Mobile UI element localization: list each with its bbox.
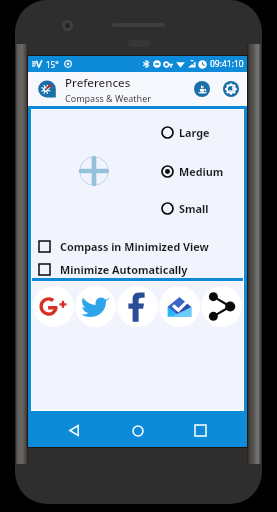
- button[interactable]: Back: [58, 414, 91, 447]
- staticText: Minimize Automatically: [60, 262, 188, 277]
- button[interactable]: Large: [159, 123, 212, 142]
- button[interactable]: Minimize Automatically: [35, 260, 192, 279]
- button[interactable]: Email: [159, 286, 200, 327]
- button[interactable]: Java: [194, 81, 210, 97]
- staticText: Compass in Minimized View: [60, 239, 209, 254]
- staticText: Large: [179, 125, 210, 140]
- staticText: Small: [179, 201, 209, 216]
- button[interactable]: Facebook: [117, 286, 158, 327]
- button[interactable]: Medium: [159, 162, 226, 181]
- button[interactable]: Compass in Minimized View: [35, 237, 213, 256]
- button[interactable]: Recents: [184, 414, 217, 447]
- staticText: Medium: [179, 164, 224, 179]
- button[interactable]: Settings: [223, 81, 239, 97]
- staticText: 15°: [46, 59, 59, 70]
- button[interactable]: Small: [159, 199, 211, 218]
- button[interactable]: Google Plus: [33, 286, 74, 327]
- button[interactable]: Twitter: [75, 286, 116, 327]
- staticText: 09:41:10: [210, 58, 244, 70]
- staticText: Compass & Weather: [65, 92, 151, 104]
- button[interactable]: App icon: [37, 79, 57, 99]
- button[interactable]: Share: [201, 286, 242, 327]
- button[interactable]: Home: [121, 414, 154, 447]
- staticText: Preferences: [65, 75, 131, 91]
